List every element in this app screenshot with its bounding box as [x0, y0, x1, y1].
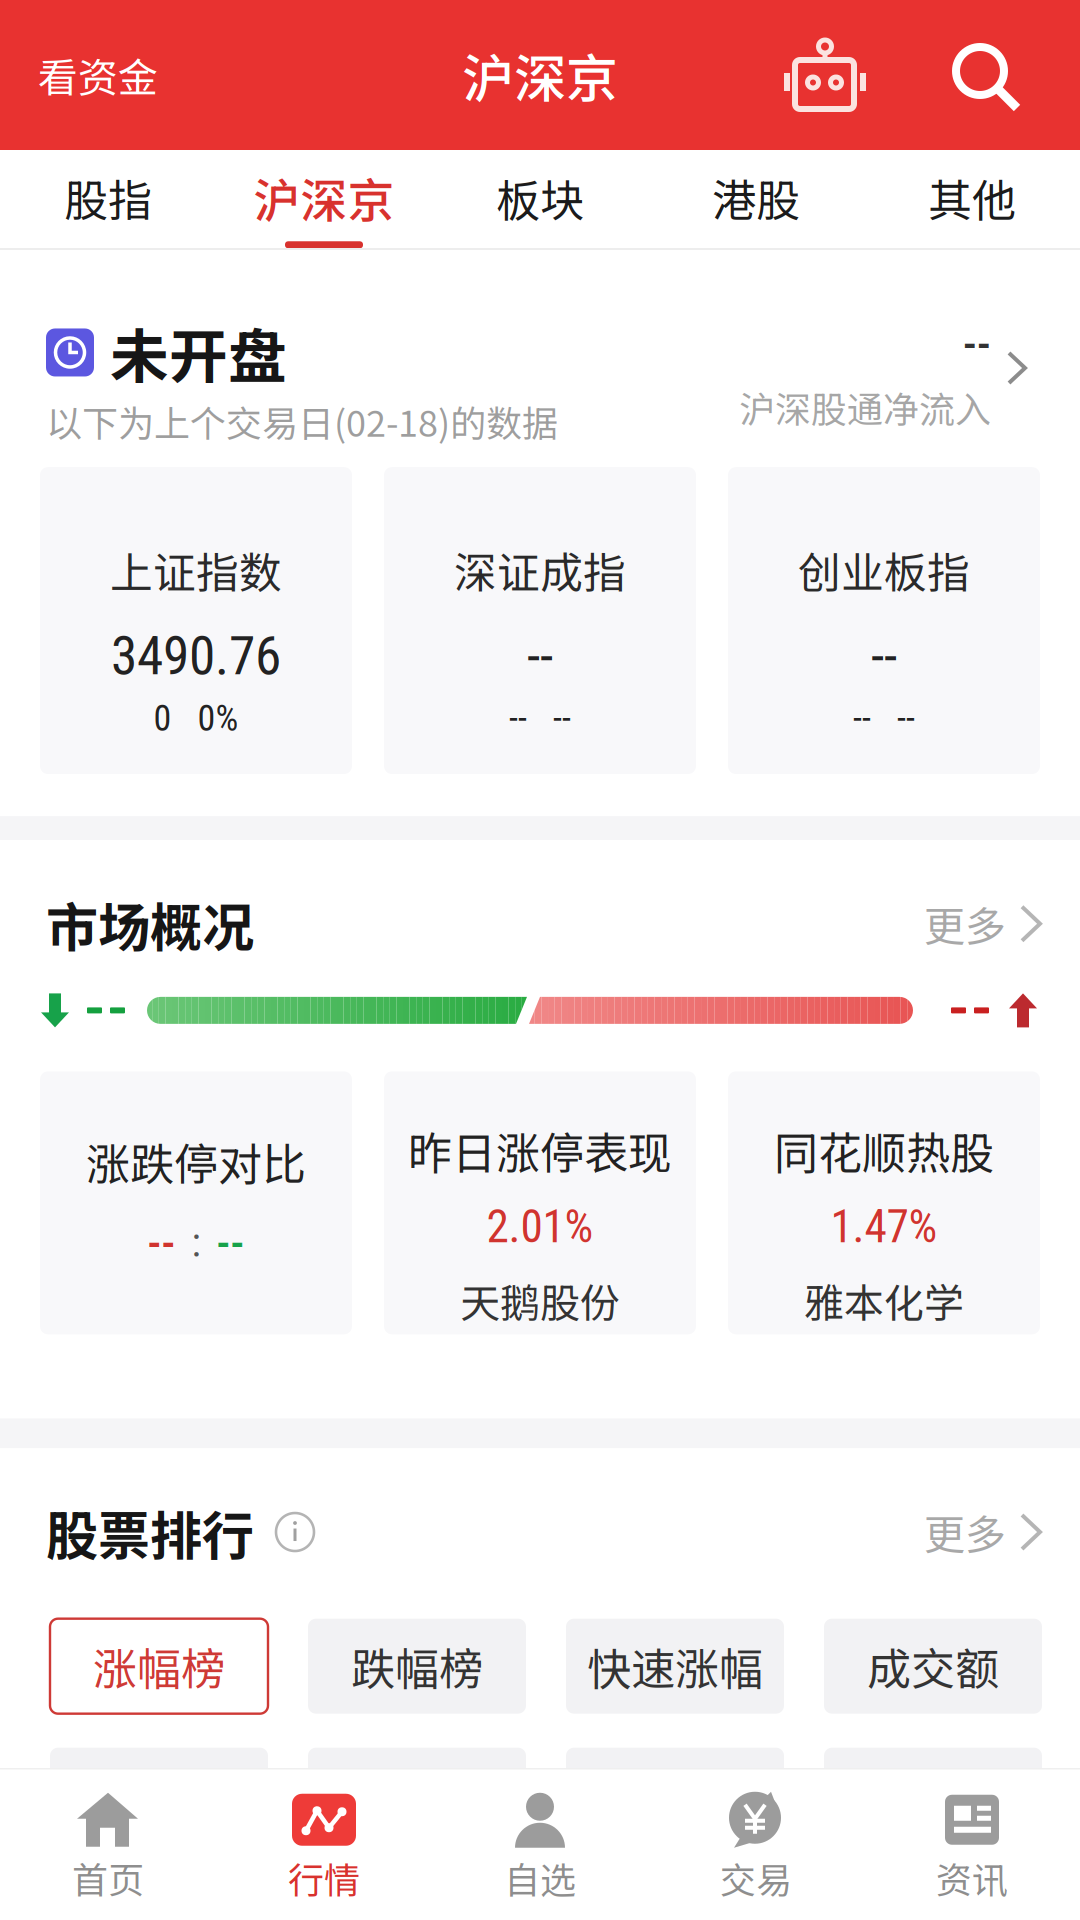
- staticText: 昨日涨停表现: [408, 1118, 672, 1182]
- button[interactable]: 昨日涨停表现: [384, 1071, 696, 1334]
- button[interactable]: 交易: [648, 1769, 864, 1920]
- button[interactable]: 量比榜: [566, 1748, 784, 1843]
- staticText: --: [509, 697, 527, 740]
- button[interactable]: 看资金: [0, 0, 196, 150]
- staticText: 换手率: [351, 1763, 483, 1827]
- button[interactable]: 港股: [648, 150, 864, 248]
- button[interactable]: --: [727, 310, 1039, 430]
- staticText: 交易: [720, 1852, 792, 1904]
- staticText: 振幅榜: [93, 1763, 225, 1827]
- staticText: 沪深京: [462, 37, 618, 113]
- staticText: 涨幅榜: [93, 1634, 225, 1698]
- staticText: 以下为上个交易日(02-18)的数据: [46, 395, 558, 447]
- staticText: --: [897, 697, 915, 740]
- staticText: 涨跌停对比: [86, 1129, 306, 1193]
- staticText: 1.47%: [830, 1200, 937, 1253]
- button[interactable]: 板块: [432, 150, 648, 248]
- button[interactable]: 创业板指: [728, 467, 1040, 774]
- staticText: 快速涨幅: [587, 1634, 763, 1698]
- staticText: 雅本化学: [804, 1271, 964, 1329]
- staticText: 其他: [928, 166, 1016, 229]
- button[interactable]: 股指: [0, 150, 216, 248]
- staticText: 股票排行: [46, 1494, 254, 1570]
- staticText: 0%: [197, 697, 238, 740]
- staticText: 深证成指: [454, 539, 626, 601]
- button[interactable]: 沪深京: [216, 150, 432, 248]
- staticText: --: [871, 625, 897, 687]
- staticText: 0: [153, 697, 171, 740]
- staticText: 未开盘: [110, 310, 287, 395]
- button[interactable]: 深证成指: [384, 467, 696, 774]
- button[interactable]: 涨跌停对比: [40, 1071, 352, 1334]
- button[interactable]: 跌幅榜: [308, 1619, 526, 1714]
- staticText: --: [963, 318, 991, 370]
- button[interactable]: AI assistant: [728, 0, 922, 150]
- staticText: --: [853, 697, 871, 740]
- staticText: 板块: [496, 166, 584, 229]
- button[interactable]: 更多: [924, 894, 1042, 954]
- staticText: 成交额: [867, 1634, 999, 1698]
- staticText: 资讯: [936, 1852, 1008, 1904]
- staticText: 更多: [924, 894, 1006, 954]
- button[interactable]: 其他: [864, 150, 1080, 248]
- staticText: 更多: [924, 1502, 1006, 1562]
- staticText: --: [553, 697, 571, 740]
- staticText: 量比榜: [609, 1763, 741, 1827]
- staticText: --: [527, 625, 553, 687]
- staticText: 自选: [504, 1852, 576, 1904]
- staticText: 港股: [712, 166, 800, 229]
- button[interactable]: 首页: [0, 1769, 216, 1920]
- staticText: 3490.76: [111, 625, 281, 687]
- staticText: 沪深京: [253, 164, 394, 231]
- button[interactable]: 自选: [432, 1769, 648, 1920]
- staticText: 市场概况: [46, 886, 254, 961]
- button[interactable]: 更多: [924, 1502, 1042, 1562]
- staticText: 股指: [64, 166, 152, 229]
- staticText: 看资金: [38, 46, 158, 104]
- staticText: 创业板指: [798, 539, 970, 601]
- staticText: :: [191, 1219, 200, 1266]
- staticText: 行情: [288, 1852, 360, 1904]
- staticText: --: [216, 1217, 244, 1269]
- button[interactable]: 上证指数: [40, 467, 352, 774]
- staticText: 同花顺热股: [774, 1118, 994, 1182]
- button[interactable]: 同花顺热股: [728, 1071, 1040, 1334]
- button[interactable]: 成交额: [824, 1619, 1042, 1714]
- button[interactable]: 换手率: [308, 1748, 526, 1843]
- button[interactable]: 涨幅榜: [50, 1619, 268, 1714]
- button[interactable]: 快速涨幅: [566, 1619, 784, 1714]
- staticText: --: [147, 1217, 175, 1269]
- staticText: 跌幅榜: [351, 1634, 483, 1698]
- button[interactable]: Search: [922, 0, 1050, 150]
- button[interactable]: 市盈率: [824, 1748, 1042, 1843]
- staticText: 上证指数: [110, 539, 282, 601]
- button[interactable]: 资讯: [864, 1769, 1080, 1920]
- staticText: 2.01%: [486, 1200, 593, 1253]
- staticText: 沪深股通净流入: [739, 381, 991, 433]
- button[interactable]: 行情: [216, 1769, 432, 1920]
- staticText: 市盈率: [867, 1763, 999, 1827]
- staticText: 天鹅股份: [460, 1271, 620, 1329]
- staticText: 首页: [72, 1852, 144, 1904]
- button[interactable]: 振幅榜: [50, 1748, 268, 1843]
